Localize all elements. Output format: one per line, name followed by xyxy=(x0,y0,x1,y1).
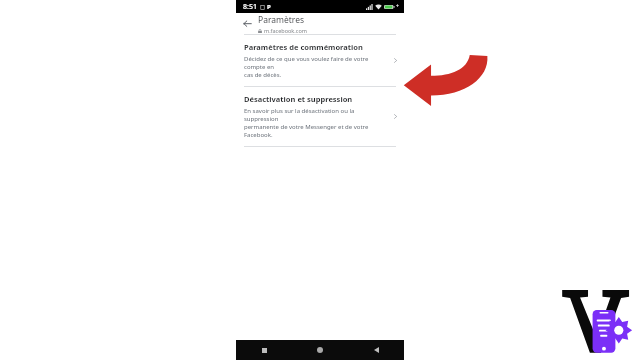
staticText: + xyxy=(396,3,399,10)
staticText: cas de décès. xyxy=(244,71,282,79)
staticText: En savoir plus sur la désactivation ou l… xyxy=(244,107,389,123)
staticText: Décidez de ce que vous voulez faire de v… xyxy=(244,55,389,71)
staticText: Paramètres xyxy=(258,14,305,26)
button[interactable]: Home xyxy=(292,340,348,360)
button[interactable]: Paramètres de commémoration xyxy=(236,35,404,86)
button[interactable]: Back xyxy=(348,340,404,360)
staticText: Paramètres de commémoration xyxy=(244,42,363,52)
staticText: m.facebook.com xyxy=(264,27,307,34)
staticText: permanente de votre Messenger et de votr… xyxy=(244,123,389,139)
staticText: P xyxy=(267,3,271,11)
button[interactable]: Recent apps xyxy=(236,340,292,360)
button[interactable]: Désactivation et suppression xyxy=(236,87,404,146)
staticText: Désactivation et suppression xyxy=(244,94,353,104)
button[interactable]: Back xyxy=(236,13,258,34)
staticText: 8:51 xyxy=(243,2,257,12)
